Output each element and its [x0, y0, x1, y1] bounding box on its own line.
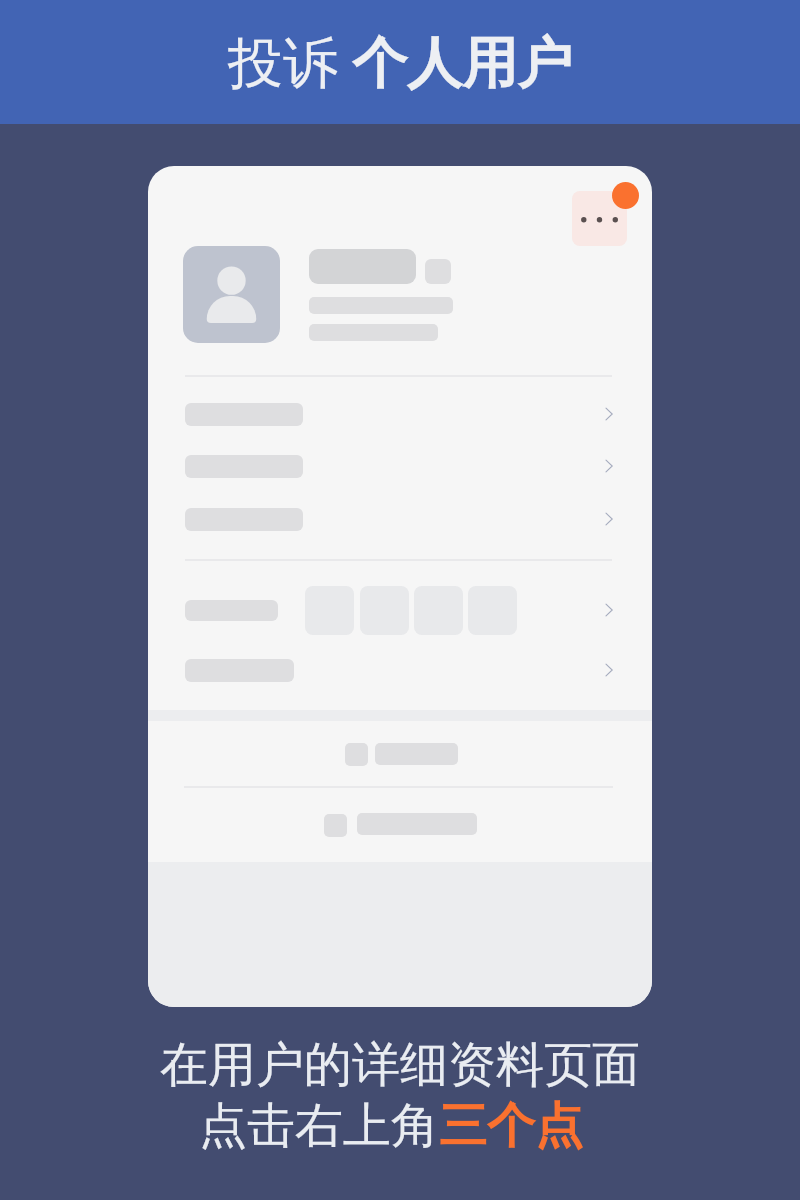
button[interactable]: Menu item	[148, 726, 652, 786]
staticText: 投诉 个人用户	[228, 23, 573, 98]
staticText: 在用户的详细资料页面	[160, 1035, 640, 1095]
button[interactable]: List item	[148, 440, 652, 492]
button[interactable]: More options	[572, 191, 627, 246]
button[interactable]: List item	[148, 388, 652, 440]
button[interactable]: Avatar	[183, 246, 280, 343]
button[interactable]: List item	[148, 644, 652, 696]
staticText: 点击右上角三个点	[199, 1096, 583, 1156]
button[interactable]: Menu item	[148, 797, 652, 857]
button[interactable]: List item	[148, 493, 652, 545]
button[interactable]: 投诉 个人用户	[0, 0, 800, 124]
button[interactable]: Photos row	[148, 584, 652, 637]
